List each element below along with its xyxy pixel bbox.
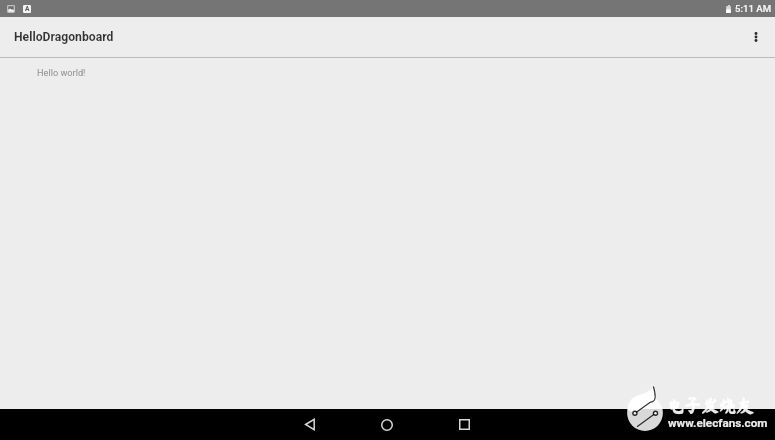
staticText: www.elecfans.com (668, 416, 768, 430)
staticText: A (25, 5, 30, 13)
staticText: HelloDragonboard (14, 30, 114, 44)
button[interactable]: Recents (441, 409, 487, 440)
staticText: 5:11 AM (735, 3, 772, 14)
staticText: Hello world! (37, 67, 86, 78)
staticText: 电子发烧友 (666, 397, 754, 414)
button[interactable]: Back (287, 409, 333, 440)
button[interactable]: Home (364, 409, 410, 440)
button[interactable]: More options (739, 20, 773, 54)
